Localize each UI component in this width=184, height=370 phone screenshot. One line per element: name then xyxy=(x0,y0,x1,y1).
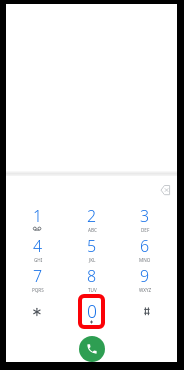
staticText: 2 xyxy=(87,205,97,223)
button[interactable] xyxy=(65,262,118,290)
staticText: 0 xyxy=(87,299,97,319)
staticText: 8 xyxy=(87,265,97,283)
button[interactable] xyxy=(12,262,65,290)
staticText: 7 xyxy=(33,265,43,283)
staticText: DEF xyxy=(141,227,150,233)
staticText: TUV xyxy=(88,287,97,293)
button[interactable] xyxy=(119,262,172,290)
button[interactable] xyxy=(119,232,172,260)
staticText: MNO xyxy=(139,257,151,263)
button[interactable] xyxy=(154,181,178,199)
button[interactable] xyxy=(119,298,172,326)
staticText: 3 xyxy=(140,205,150,223)
staticText: ABC xyxy=(88,227,97,233)
button[interactable] xyxy=(12,298,65,326)
button[interactable] xyxy=(12,232,65,260)
button[interactable] xyxy=(119,202,172,230)
staticText: GHI xyxy=(34,257,43,263)
button[interactable] xyxy=(65,202,118,230)
staticText: 6 xyxy=(140,235,150,253)
staticText: JKL xyxy=(89,257,96,263)
staticText: WXYZ xyxy=(139,287,152,293)
staticText: 4 xyxy=(33,235,43,253)
button[interactable] xyxy=(65,232,118,260)
staticText: 1 xyxy=(33,205,43,223)
staticText: 5 xyxy=(87,235,97,253)
staticText: 9 xyxy=(140,265,150,283)
button[interactable] xyxy=(79,336,105,362)
button[interactable] xyxy=(12,202,65,230)
button[interactable] xyxy=(65,298,118,326)
staticText: PQRS xyxy=(32,287,44,293)
